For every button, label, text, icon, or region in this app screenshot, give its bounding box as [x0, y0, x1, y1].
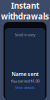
staticText: Send money [14, 32, 35, 37]
staticText: You earned $1.00 [10, 78, 39, 84]
staticText: Instant [11, 0, 39, 11]
staticText: Name sent [11, 70, 38, 77]
staticText: withdrawals [1, 11, 49, 22]
staticText: View details [15, 85, 35, 90]
